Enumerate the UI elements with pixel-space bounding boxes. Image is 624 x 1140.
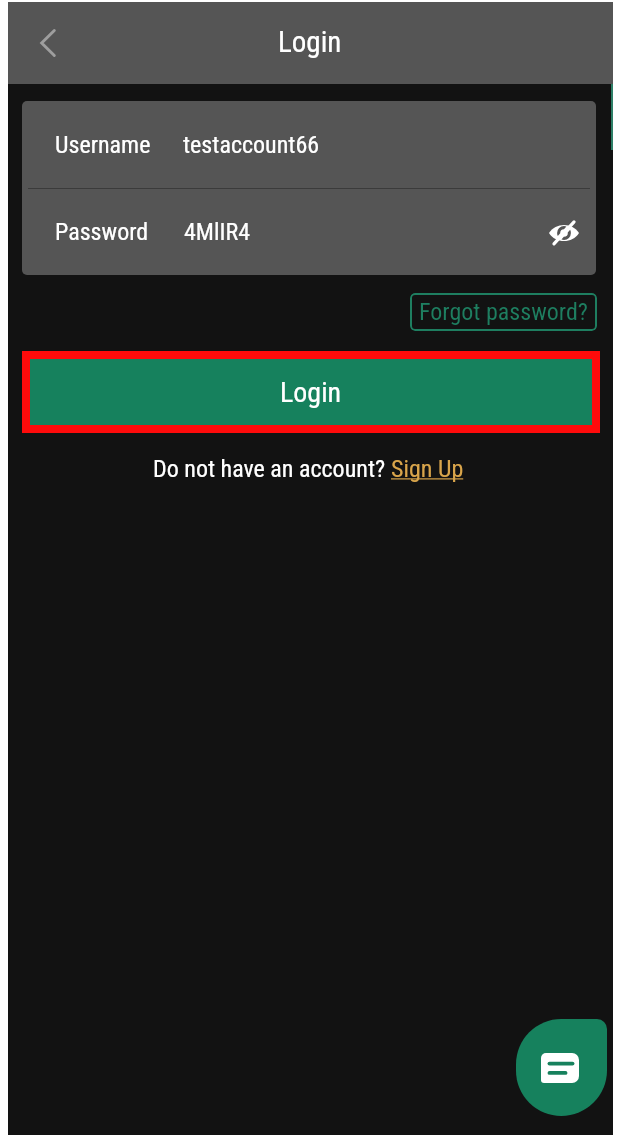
- button[interactable]: Chat: [516, 1019, 607, 1116]
- staticText: Sign Up: [391, 455, 464, 483]
- staticText: Username: [55, 131, 151, 159]
- button[interactable]: Hide password: [540, 209, 587, 256]
- button[interactable]: Username: [22, 101, 596, 188]
- staticText: Password: [55, 218, 149, 246]
- button[interactable]: Back: [22, 17, 74, 69]
- button[interactable]: Password: [22, 189, 596, 275]
- staticText: Login: [280, 376, 342, 409]
- staticText: 4MlIR4: [184, 218, 251, 246]
- button[interactable]: Sign Up: [391, 455, 464, 483]
- button[interactable]: Login: [22, 351, 600, 433]
- staticText: Login: [278, 25, 342, 59]
- button[interactable]: Forgot password?: [410, 293, 597, 331]
- staticText: Forgot password?: [419, 298, 588, 326]
- staticText: testaccount66: [183, 131, 320, 159]
- staticText: Do not have an account?: [153, 455, 391, 483]
